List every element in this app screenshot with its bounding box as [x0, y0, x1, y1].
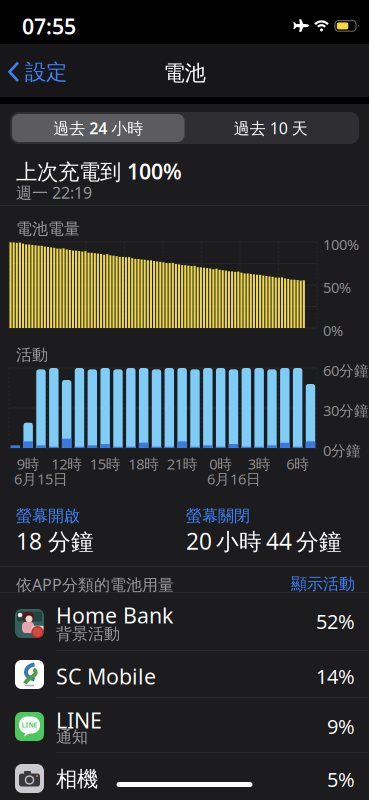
staticText: Home Bank — [56, 601, 173, 629]
staticText: 6月15日 — [14, 469, 68, 488]
staticText: 60分鐘 — [323, 360, 369, 380]
staticText: 6月16日 — [207, 469, 261, 488]
staticText: 通知 — [56, 727, 88, 747]
staticText: 電池電量 — [16, 219, 80, 239]
staticText: 15時 — [90, 454, 121, 473]
staticText: 30分鐘 — [323, 400, 369, 420]
staticText: 12時 — [51, 454, 82, 473]
staticText: 5% — [327, 766, 355, 793]
staticText: 設定 — [25, 59, 67, 85]
button[interactable]: 過去 24 小時 — [12, 114, 184, 142]
staticText: 螢幕開啟 — [16, 506, 80, 526]
staticText: LINE — [56, 706, 102, 734]
staticText: SC Mobile — [56, 662, 156, 690]
staticText: 過去 24 小時 — [53, 117, 143, 139]
staticText: 100% — [323, 234, 359, 254]
staticText: 6時 — [286, 454, 309, 473]
button[interactable]: 顯示活動 — [235, 574, 355, 594]
staticText: 電池 — [163, 60, 205, 86]
button[interactable]: LINE — [0, 697, 369, 752]
staticText: 0分鐘 — [323, 440, 361, 460]
staticText: 3時 — [248, 454, 271, 473]
staticText: 過去 10 天 — [234, 117, 308, 139]
staticText: 週一 22:19 — [16, 182, 92, 203]
staticText: LINE — [21, 721, 37, 729]
button[interactable]: SC Mobile — [0, 650, 369, 697]
staticText: 0時 — [209, 454, 232, 473]
staticText: 14% — [316, 663, 355, 690]
staticText: 顯示活動 — [291, 574, 355, 594]
staticText: 依APP分類的電池用量 — [16, 574, 174, 595]
button[interactable]: 設定 — [0, 59, 71, 85]
staticText: 背景活動 — [56, 624, 120, 644]
staticText: 18時 — [128, 454, 159, 473]
staticText: 18 分鐘 — [16, 526, 94, 556]
staticText: 9% — [327, 713, 355, 740]
button[interactable]: 過去 10 天 — [184, 114, 357, 142]
staticText: 20 小時 44 分鐘 — [186, 526, 342, 556]
staticText: 52% — [316, 608, 355, 635]
staticText: 9時 — [17, 454, 40, 473]
staticText: 上次充電到 100% — [16, 157, 182, 185]
staticText: 活動 — [16, 345, 48, 365]
staticText: 0% — [323, 320, 343, 340]
staticText: 螢幕關閉 — [186, 506, 250, 526]
button[interactable]: 相機 — [0, 752, 369, 800]
staticText: 07:55 — [22, 12, 76, 40]
staticText: 相機 — [56, 766, 98, 792]
button[interactable]: Home Bank — [0, 592, 369, 650]
staticText: 50% — [323, 277, 351, 297]
staticText: 21時 — [167, 454, 198, 473]
